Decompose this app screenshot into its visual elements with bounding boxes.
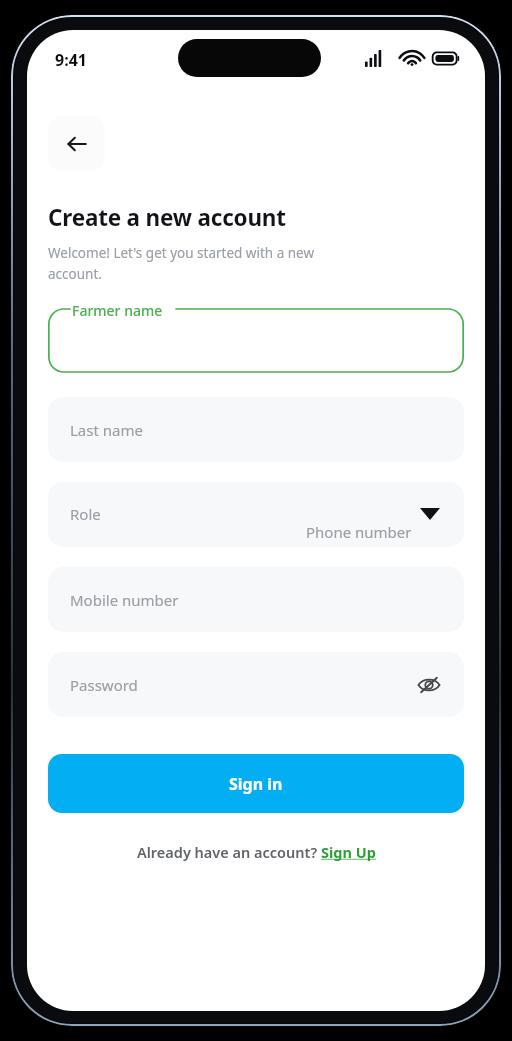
- button[interactable]: Farmer name: [48, 301, 464, 373]
- staticText: Sign in: [229, 773, 283, 795]
- staticText: Farmer name: [72, 301, 163, 320]
- staticText: Welcome! Let's get you started with a ne…: [48, 244, 315, 283]
- staticText: Sign Up: [321, 842, 376, 862]
- staticText: Role: [70, 504, 101, 524]
- button[interactable]: Password: [48, 652, 464, 717]
- button[interactable]: Role: [48, 482, 464, 547]
- staticText: Create a new account: [48, 202, 286, 233]
- staticText: Last name: [70, 420, 143, 440]
- button[interactable]: Sign Up: [321, 842, 376, 862]
- button[interactable]: Last name: [48, 397, 464, 462]
- staticText: Mobile number: [70, 590, 179, 610]
- button[interactable]: Toggle password visibility: [412, 668, 446, 702]
- staticText: Password: [70, 675, 138, 695]
- button[interactable]: Mobile number: [48, 567, 464, 632]
- staticText: 9:41: [55, 49, 87, 71]
- staticText: Already have an account?: [137, 842, 321, 862]
- button[interactable]: Sign in: [48, 754, 464, 813]
- button[interactable]: Back: [48, 116, 105, 171]
- staticText: Phone number: [306, 522, 412, 542]
